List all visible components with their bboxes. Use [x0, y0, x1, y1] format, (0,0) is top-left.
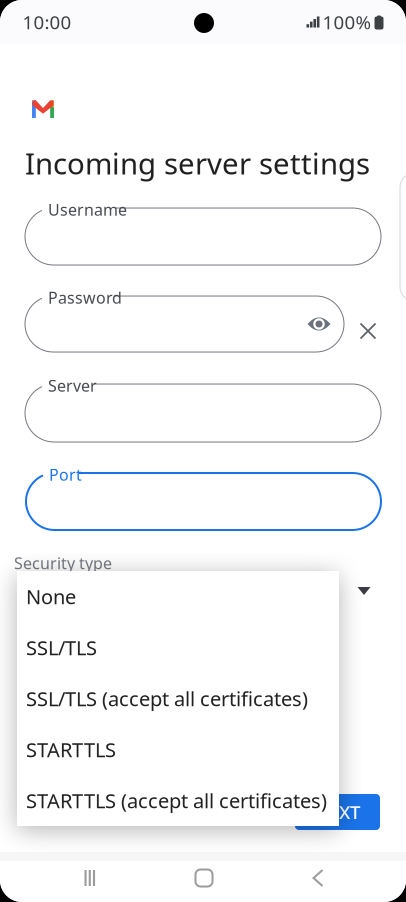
button[interactable]: NEXT	[295, 794, 380, 830]
button[interactable]: Back	[283, 853, 353, 902]
staticText: STARTTLS	[26, 736, 116, 763]
staticText: Security type	[14, 552, 112, 574]
button[interactable]: Show password	[303, 309, 335, 339]
staticText: Incoming server settings	[25, 143, 370, 182]
staticText: Port	[49, 464, 82, 485]
staticText: SSL/TLS (accept all certificates)	[26, 685, 308, 712]
staticText: 10:00	[22, 10, 71, 34]
staticText: Username	[48, 199, 127, 220]
button[interactable]: Security type	[347, 574, 381, 608]
staticText: Server	[48, 375, 97, 396]
button[interactable]: STARTTLS (accept all certificates)	[17, 775, 339, 826]
button[interactable]: STARTTLS	[17, 724, 339, 775]
staticText: STARTTLS (accept all certificates)	[26, 787, 327, 814]
button[interactable]: Clear	[350, 313, 386, 349]
staticText: NEXT	[315, 800, 360, 824]
button[interactable]: Home	[169, 853, 239, 902]
button[interactable]: SSL/TLS (accept all certificates)	[17, 673, 339, 724]
staticText: None	[26, 583, 76, 610]
staticText: 100%	[322, 10, 371, 34]
button[interactable]: Recent apps	[55, 853, 125, 902]
button[interactable]: SSL/TLS	[17, 622, 339, 673]
staticText: SSL/TLS	[26, 634, 97, 661]
staticText: Password	[48, 287, 122, 308]
button[interactable]: None	[17, 571, 339, 622]
